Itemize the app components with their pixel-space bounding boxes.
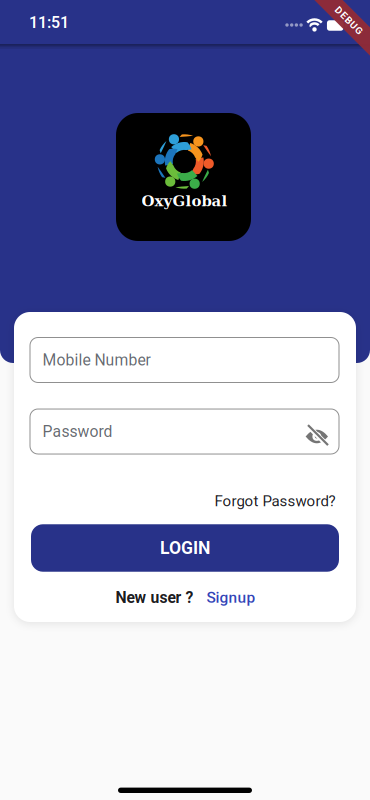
staticText: Signup [206, 588, 255, 606]
button[interactable]: Password [29, 408, 339, 454]
staticText: LOGIN [160, 538, 210, 558]
button[interactable]: Signup [206, 588, 255, 606]
button[interactable]: Forgot Password? [214, 492, 335, 510]
button[interactable]: Mobile Number [29, 337, 339, 383]
button[interactable]: LOGIN [31, 524, 339, 572]
staticText: New user ? [115, 588, 193, 607]
button[interactable]: Show password [297, 416, 337, 456]
staticText: 11:51 [29, 13, 69, 32]
staticText: DEBUG [331, 15, 367, 26]
staticText: Forgot Password? [214, 492, 335, 510]
staticText: OxyGlobal [141, 192, 227, 210]
staticText: Mobile Number [42, 351, 150, 369]
staticText: Password [42, 422, 112, 441]
